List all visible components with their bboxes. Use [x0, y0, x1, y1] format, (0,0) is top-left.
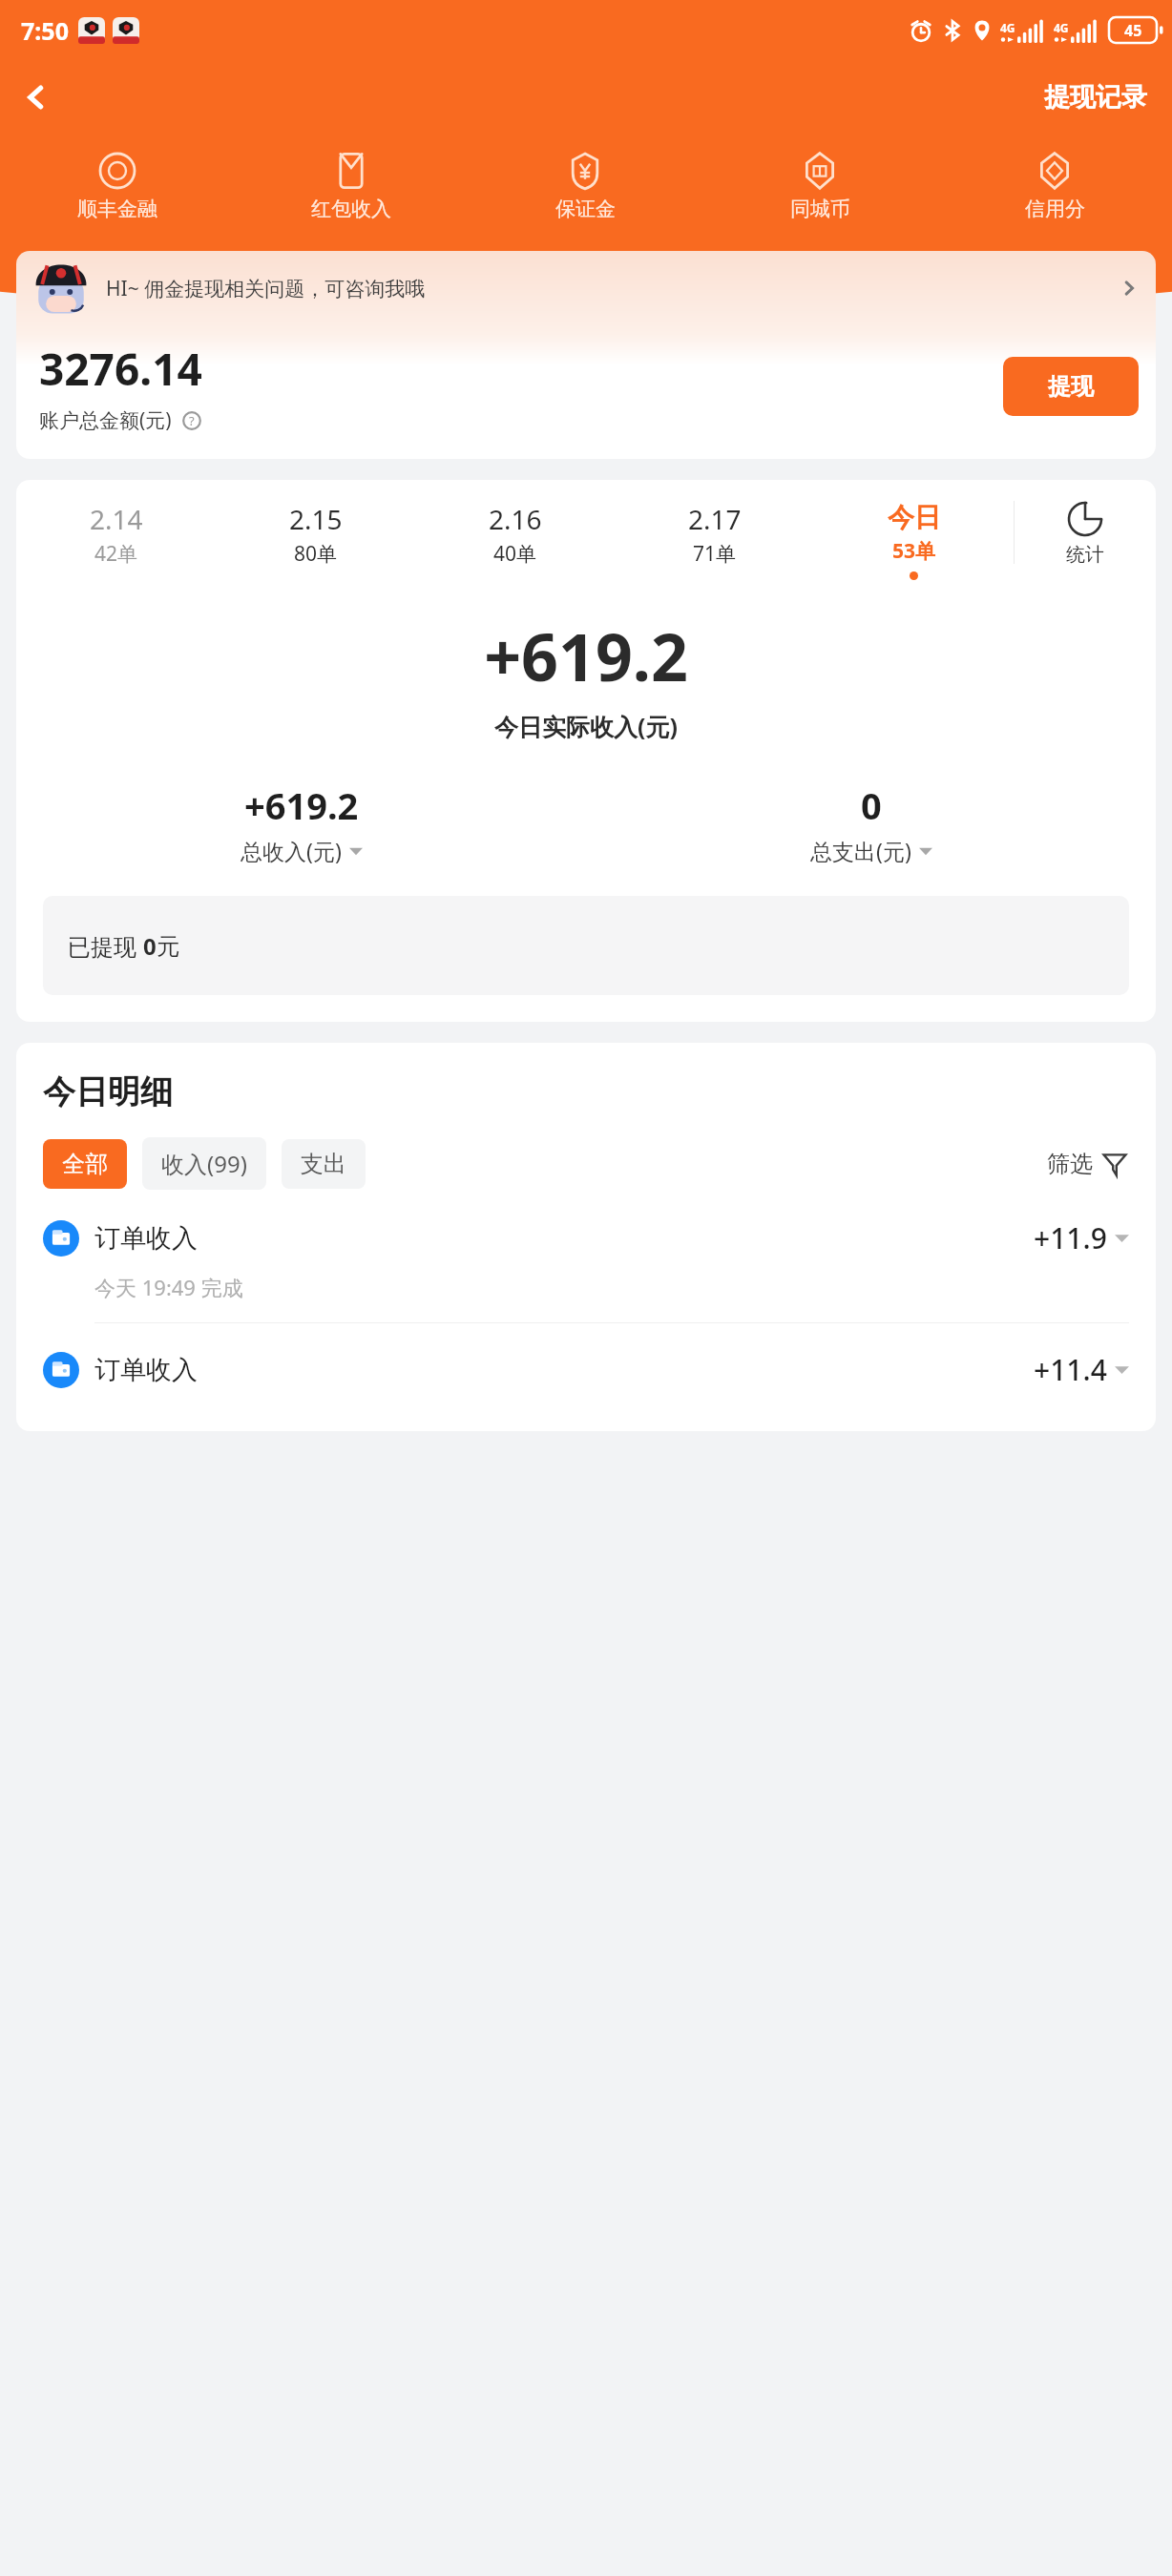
staticText: 提现记录 — [1044, 81, 1147, 114]
staticText: 今天 19:49 完成 — [94, 1273, 243, 1301]
button[interactable]: 订单收入 — [16, 1350, 1156, 1408]
button[interactable]: Help — [181, 410, 202, 431]
button[interactable]: 全部 — [43, 1139, 127, 1189]
staticText: 今日明细 — [43, 1071, 173, 1112]
staticText: 2.14 — [90, 501, 143, 537]
staticText: 收入(99) — [161, 1148, 247, 1179]
staticText: 统计 — [1066, 543, 1104, 567]
staticText: 今日实际收入(元) — [16, 710, 1156, 742]
button[interactable]: 订单收入 — [16, 1218, 1156, 1350]
staticText: 40单 — [493, 540, 537, 568]
staticText: 保证金 — [555, 197, 616, 221]
staticText: 支出 — [301, 1150, 346, 1178]
staticText: 42单 — [94, 540, 138, 568]
button[interactable]: 0 — [586, 780, 1156, 865]
staticText: 已提现 — [68, 930, 143, 962]
button[interactable]: 收入(99) — [142, 1137, 266, 1190]
staticText: 订单收入 — [94, 1222, 198, 1255]
staticText: 4G — [1000, 20, 1015, 35]
button[interactable]: 2.14 — [16, 501, 216, 568]
button[interactable]: 同城币 — [702, 152, 937, 221]
staticText: 元 — [157, 932, 179, 961]
staticText: 71单 — [693, 540, 737, 568]
button[interactable]: 2.16 — [415, 501, 615, 568]
staticText: 3276.14 — [39, 339, 202, 399]
staticText: 4G — [1054, 20, 1069, 35]
staticText: 订单收入 — [94, 1354, 198, 1386]
staticText: +619.2 — [16, 612, 1156, 700]
staticText: 筛选 — [1047, 1150, 1093, 1178]
button[interactable]: 今日 — [814, 501, 1014, 580]
staticText: 全部 — [62, 1150, 108, 1178]
button[interactable]: 2.15 — [216, 501, 415, 568]
staticText: 今日 — [888, 501, 941, 534]
staticText: 提现 — [1048, 372, 1094, 401]
button[interactable]: 筛选 — [1047, 1150, 1129, 1178]
staticText: 总支出(元) — [810, 836, 911, 865]
staticText: 2.15 — [289, 501, 343, 537]
button[interactable]: 红包收入 — [234, 152, 468, 221]
button[interactable]: 顺丰金融 — [0, 152, 234, 221]
staticText: 0 — [861, 780, 882, 830]
button[interactable]: Back — [10, 71, 63, 124]
staticText: 45 — [1124, 20, 1142, 41]
staticText: +11.4 — [1034, 1350, 1107, 1389]
staticText: ? — [189, 412, 195, 429]
button[interactable]: 保证金 — [468, 152, 702, 221]
button[interactable]: +619.2 — [16, 780, 586, 865]
button[interactable]: HI~ 佣金提现相关问题，可咨询我哦 — [30, 251, 1137, 325]
staticText: 7:50 — [21, 14, 69, 47]
staticText: 2.16 — [489, 501, 542, 537]
button[interactable]: 统计 — [1015, 501, 1156, 567]
button[interactable]: 已提现 — [43, 896, 1129, 995]
staticText: +619.2 — [244, 780, 359, 830]
staticText: 红包收入 — [311, 197, 391, 221]
staticText: 53单 — [892, 537, 936, 565]
staticText: 账户总金额(元) — [39, 406, 172, 434]
staticText: 0 — [143, 930, 157, 962]
button[interactable]: 提现 — [1003, 357, 1139, 416]
button[interactable]: 支出 — [282, 1139, 366, 1189]
staticText: 顺丰金融 — [77, 197, 157, 221]
staticText: 2.17 — [688, 501, 742, 537]
button[interactable]: 信用分 — [937, 152, 1172, 221]
staticText: HI~ 佣金提现相关问题，可咨询我哦 — [106, 275, 426, 302]
staticText: 80单 — [294, 540, 338, 568]
button[interactable]: 2.17 — [615, 501, 814, 568]
staticText: 信用分 — [1025, 197, 1085, 221]
staticText: 同城币 — [790, 197, 850, 221]
staticText: 总收入(元) — [241, 836, 342, 865]
staticText: +11.9 — [1034, 1218, 1107, 1257]
